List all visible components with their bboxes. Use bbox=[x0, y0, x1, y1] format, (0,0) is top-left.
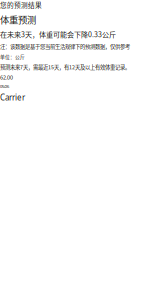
staticText: 05/26 bbox=[0, 84, 9, 89]
staticText: 您的预测结果 bbox=[0, 0, 42, 10]
staticText: 体重预测 bbox=[0, 13, 36, 26]
staticText: 在未来3天，体重可能会下降0.33公斤 bbox=[0, 29, 116, 39]
staticText: 单位：公斤 bbox=[0, 53, 25, 60]
staticText: 预测未来7天，需最近15天，有12天及以上有效体重记录。 bbox=[0, 63, 130, 71]
staticText: 62.00 bbox=[0, 74, 13, 81]
staticText: 注：该数据是基于您当前生活规律下的预测数据，仅供参考 bbox=[0, 42, 130, 50]
staticText: Carrier bbox=[0, 92, 25, 103]
